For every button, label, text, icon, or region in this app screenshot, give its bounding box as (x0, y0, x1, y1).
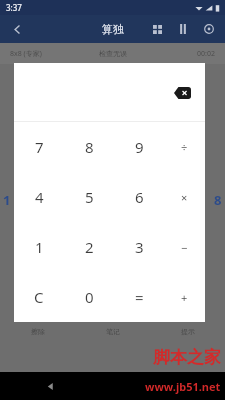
button[interactable]: − (164, 222, 205, 272)
button[interactable]: 9 (114, 122, 164, 172)
staticText: 5 (85, 187, 94, 207)
staticText: + (181, 290, 188, 305)
staticText: 8 (85, 137, 94, 157)
button[interactable]: 擦除 (0, 320, 75, 342)
staticText: × (181, 190, 188, 205)
staticText: 检查无误 (99, 49, 127, 58)
staticText: 8 (214, 191, 222, 209)
button[interactable]: 笔记 (75, 320, 150, 342)
button[interactable]: 8 (64, 122, 114, 172)
staticText: 3:37 (6, 2, 22, 13)
staticText: 1 (35, 237, 44, 257)
staticText: 擦除 (31, 327, 45, 336)
staticText: 4 (35, 187, 44, 207)
button[interactable]: Backspace (169, 83, 195, 103)
button[interactable]: + (164, 272, 205, 322)
button[interactable]: 5 (64, 172, 114, 222)
staticText: www.jb51.net (145, 379, 221, 394)
button[interactable]: Back (6, 18, 28, 40)
staticText: 6 (135, 187, 144, 207)
staticText: C (34, 287, 44, 307)
staticText: 笔记 (106, 327, 120, 336)
button[interactable]: 2 (64, 222, 114, 272)
button[interactable]: Pause (173, 19, 193, 39)
staticText: 1 (3, 191, 11, 209)
staticText: − (181, 240, 188, 255)
staticText: ÷ (181, 140, 188, 155)
staticText: 9 (135, 137, 144, 157)
button[interactable]: 6 (114, 172, 164, 222)
button[interactable]: Grid (147, 19, 167, 39)
button[interactable]: 3 (114, 222, 164, 272)
button[interactable]: ÷ (164, 122, 205, 172)
staticText: 0 (85, 287, 94, 307)
staticText: 算独 (102, 22, 124, 36)
staticText: 2 (85, 237, 94, 257)
staticText: 提示 (181, 327, 195, 336)
staticText: 8x8 (专家) (10, 49, 42, 59)
button[interactable]: 4 (14, 172, 64, 222)
staticText: 00:02 (197, 49, 215, 59)
button[interactable]: Help (199, 19, 219, 39)
staticText: 脚本之家 (153, 347, 221, 368)
button[interactable]: C (14, 272, 64, 322)
button[interactable]: 提示 (150, 320, 225, 342)
staticText: 3 (135, 237, 144, 257)
button[interactable]: 1 (14, 222, 64, 272)
staticText: 7 (35, 137, 44, 157)
button[interactable]: Back (40, 376, 60, 396)
button[interactable]: × (164, 172, 205, 222)
button[interactable]: = (114, 272, 164, 322)
staticText: = (135, 287, 144, 307)
button[interactable]: 0 (64, 272, 114, 322)
button[interactable]: 7 (14, 122, 64, 172)
